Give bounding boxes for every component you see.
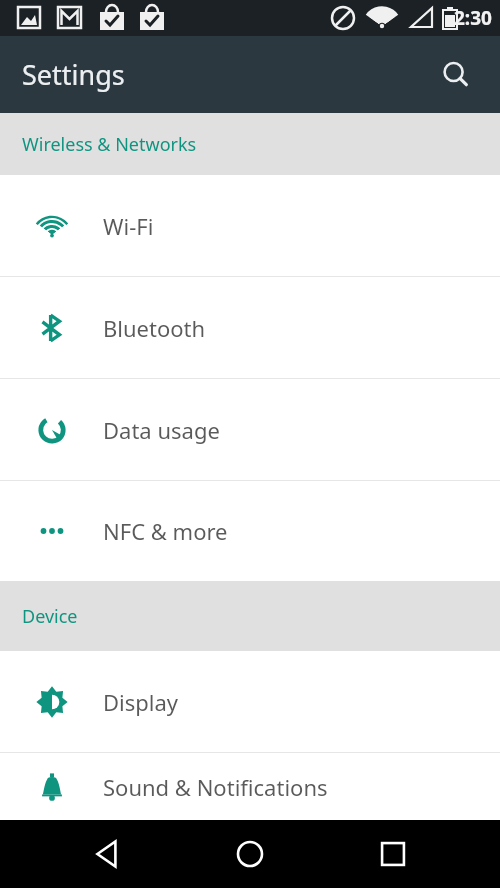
button[interactable]: Data usage <box>0 379 500 480</box>
button[interactable]: Display <box>0 651 500 752</box>
button[interactable]: NFC & more <box>0 481 500 581</box>
button[interactable]: Search <box>428 47 484 103</box>
staticText: Wi-Fi <box>103 211 154 241</box>
staticText: 2:30 <box>454 5 492 31</box>
staticText: Wireless & Networks <box>22 132 197 157</box>
staticText: Bluetooth <box>103 313 206 343</box>
staticText: Data usage <box>103 415 220 445</box>
button[interactable]: Back <box>71 820 143 888</box>
staticText: Settings <box>22 56 125 93</box>
button[interactable]: Bluetooth <box>0 277 500 378</box>
button[interactable]: Wi-Fi <box>0 175 500 276</box>
button[interactable]: Sound & Notifications <box>0 753 500 820</box>
staticText: Device <box>22 604 78 629</box>
staticText: NFC & more <box>103 516 228 546</box>
button[interactable]: Home <box>214 820 286 888</box>
button[interactable]: Recents <box>357 820 429 888</box>
staticText: Display <box>103 687 179 717</box>
staticText: Sound & Notifications <box>103 772 328 802</box>
